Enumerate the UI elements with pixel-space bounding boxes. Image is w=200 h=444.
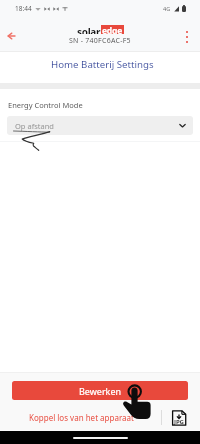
staticText: SN - 740FC6AC-F5 <box>69 36 131 46</box>
button[interactable]: Koppel los van het apparaat <box>29 412 134 423</box>
staticText: Op afstand <box>15 121 54 131</box>
staticText: Energy Control Mode <box>8 100 83 110</box>
staticText: 4G <box>163 5 171 12</box>
button[interactable]: Bewerken <box>12 381 188 400</box>
staticText: solar <box>77 25 101 34</box>
button[interactable]: More options <box>178 28 196 46</box>
staticText: edge <box>102 25 123 34</box>
staticText: 18:44 <box>15 4 32 13</box>
button[interactable]: Back <box>2 27 20 45</box>
other: Save as JPG <box>171 410 187 426</box>
staticText: JPG <box>174 418 184 426</box>
staticText: Bewerken <box>79 385 122 397</box>
button[interactable]: Op afstand <box>7 116 193 135</box>
staticText: Home Batterij Settings <box>51 58 154 71</box>
